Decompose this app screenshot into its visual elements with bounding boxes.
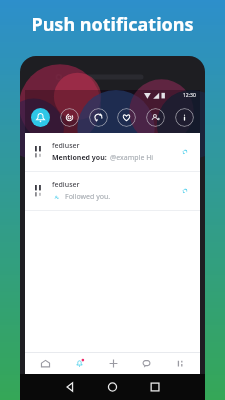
button[interactable]: Boost <box>180 186 190 196</box>
staticText: @example Hi <box>110 153 154 163</box>
button[interactable]: Follows <box>146 108 165 127</box>
staticText: Push notifications <box>0 12 225 37</box>
staticText: Mentioned you: <box>52 153 107 163</box>
button[interactable]: Notifications <box>31 108 50 127</box>
button[interactable]: Boosts <box>89 108 108 127</box>
button[interactable]: Favourites <box>117 108 136 127</box>
staticText: fediuser <box>52 180 80 190</box>
button[interactable]: fediuser <box>25 133 200 171</box>
button[interactable]: Home <box>33 352 57 374</box>
staticText: 12:30 <box>183 92 196 99</box>
button[interactable]: Mentions <box>60 108 79 127</box>
button[interactable]: Boost <box>180 147 190 157</box>
staticText: Followed you. <box>65 192 111 202</box>
button[interactable]: Lists <box>168 352 192 374</box>
button[interactable]: Notifications <box>67 352 91 374</box>
button[interactable]: Messages <box>134 352 158 374</box>
staticText: fediuser <box>52 141 80 151</box>
button[interactable]: Info <box>175 108 194 127</box>
button[interactable]: fediuser <box>25 172 200 210</box>
button[interactable]: Compose <box>101 352 125 374</box>
